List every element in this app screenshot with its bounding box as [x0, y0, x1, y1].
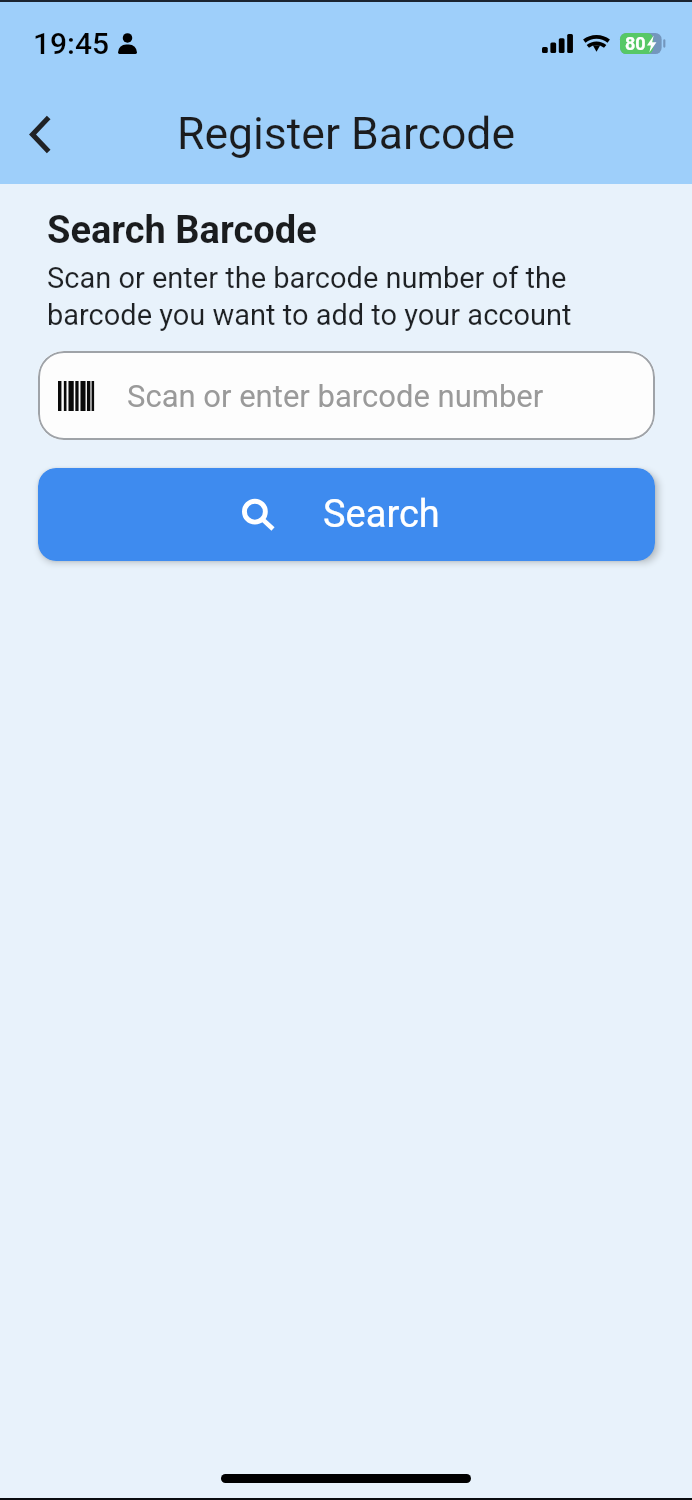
staticText: Register Barcode: [177, 108, 516, 160]
staticText: Search: [323, 492, 440, 537]
staticText: Scan or enter barcode number: [127, 378, 544, 414]
staticText: Search Barcode: [47, 208, 317, 253]
staticText: 80: [625, 33, 646, 54]
staticText: Scan or enter the barcode number of the …: [47, 261, 582, 332]
button[interactable]: Back: [14, 107, 68, 161]
button[interactable]: Search: [38, 468, 655, 561]
staticText: 19:45: [33, 26, 110, 61]
button[interactable]: Scan or enter barcode number: [38, 351, 655, 440]
